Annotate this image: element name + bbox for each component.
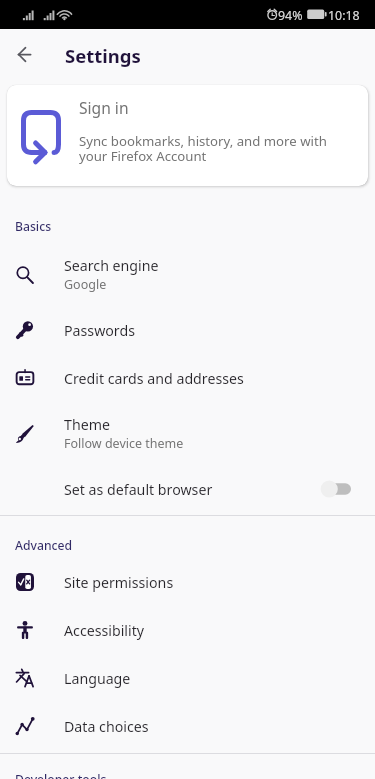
staticText: Data choices — [64, 717, 149, 736]
button[interactable]: Language — [0, 654, 375, 702]
staticText: Passwords — [64, 321, 135, 340]
button[interactable]: Data choices — [0, 702, 375, 750]
staticText: Google — [64, 276, 107, 293]
button[interactable]: Site permissions — [0, 558, 375, 606]
button[interactable]: Accessibility — [0, 606, 375, 654]
staticText: 94% — [278, 7, 303, 24]
staticText: Credit cards and addresses — [64, 369, 244, 388]
button[interactable]: Theme — [0, 402, 375, 465]
staticText: Sign in — [79, 97, 129, 118]
staticText: 10:18 — [328, 7, 360, 24]
staticText: Advanced — [15, 537, 73, 554]
staticText: Language — [64, 669, 131, 688]
staticText: Search engine — [64, 256, 159, 275]
staticText: Follow device theme — [64, 435, 184, 452]
button[interactable]: Search engine — [0, 243, 375, 306]
button[interactable]: Set as default browser toggle, off — [321, 480, 351, 498]
staticText: Set as default browser — [64, 480, 321, 499]
staticText: Accessibility — [64, 621, 145, 640]
staticText: Theme — [64, 415, 110, 434]
staticText: Site permissions — [64, 573, 174, 592]
staticText: Basics — [15, 218, 52, 235]
button[interactable]: Set as default browser — [0, 465, 375, 513]
staticText: Settings — [65, 43, 141, 68]
button[interactable]: Passwords — [0, 306, 375, 354]
staticText: Sync bookmarks, history, and more with y… — [79, 132, 331, 165]
staticText: Developer tools — [15, 771, 107, 779]
button[interactable]: Credit cards and addresses — [0, 354, 375, 402]
button[interactable]: Navigate up — [4, 34, 44, 74]
button[interactable]: Sign in — [7, 85, 368, 186]
